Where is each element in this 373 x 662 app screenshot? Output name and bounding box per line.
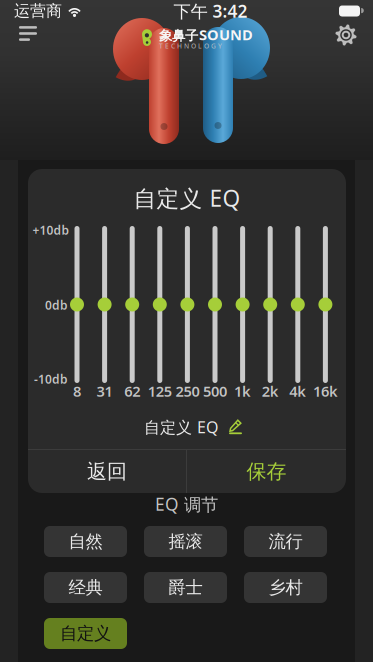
staticText: 250 — [175, 381, 199, 401]
staticText: 返回 — [87, 459, 127, 484]
staticText: 乡村 — [268, 577, 302, 598]
staticText: 下午 3:42 — [173, 0, 247, 22]
staticText: 自定义 EQ — [144, 416, 218, 438]
staticText: 摇滚 — [168, 531, 202, 552]
staticText: 自定义 EQ — [133, 183, 240, 213]
staticText: 经典 — [68, 577, 102, 598]
staticText: 4k — [289, 381, 306, 401]
staticText: 象鼻子 — [159, 28, 198, 44]
staticText: 流行 — [268, 531, 302, 552]
button[interactable]: 自定义 — [44, 618, 127, 649]
staticText: 500 — [203, 381, 227, 401]
staticText: 8 — [73, 381, 81, 401]
button[interactable]: Settings — [329, 18, 363, 52]
button[interactable]: 保存 — [187, 450, 346, 493]
staticText: 自定义 — [60, 623, 111, 644]
staticText: -10db — [34, 371, 68, 387]
staticText: 运营商 — [14, 1, 62, 21]
staticText: EQ 调节 — [155, 492, 218, 515]
button[interactable]: 爵士 — [144, 572, 227, 603]
button[interactable]: 自然 — [44, 526, 127, 557]
button[interactable]: Rename preset — [227, 417, 244, 437]
button[interactable]: Menu — [11, 18, 45, 49]
button[interactable]: 返回 — [28, 450, 186, 493]
button[interactable]: 乡村 — [244, 572, 327, 603]
staticText: 自然 — [68, 531, 102, 552]
staticText: 爵士 — [168, 577, 202, 598]
staticText: 1k — [234, 381, 251, 401]
button[interactable]: 流行 — [244, 526, 327, 557]
button[interactable]: 摇滚 — [144, 526, 227, 557]
button[interactable]: 经典 — [44, 572, 127, 603]
staticText: +10db — [32, 222, 69, 238]
staticText: SOUND — [199, 25, 253, 44]
staticText: T E C H N O L O G Y — [159, 42, 222, 50]
staticText: 62 — [124, 381, 140, 401]
staticText: 31 — [97, 381, 113, 401]
staticText: 125 — [148, 381, 172, 401]
staticText: 16k — [313, 381, 338, 401]
staticText: 保存 — [246, 459, 286, 484]
staticText: 2k — [262, 381, 279, 401]
staticText: 0db — [45, 297, 68, 313]
